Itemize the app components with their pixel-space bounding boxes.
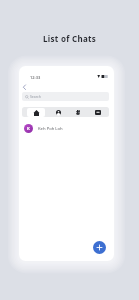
button[interactable]: Archive tab [89,108,107,117]
staticText: 12:33 [30,75,41,80]
staticText: List of Chats [43,33,97,44]
staticText: Keh Poh Loh [38,126,63,132]
button[interactable]: Search [22,92,109,101]
button[interactable]: Back [20,81,30,91]
button[interactable]: New chat [93,241,106,254]
staticText: K [27,126,30,132]
button[interactable]: Groups tab [69,108,87,117]
button[interactable]: K [19,122,114,135]
staticText: Search [30,94,41,99]
button[interactable]: Profile tab [49,108,67,117]
button[interactable]: Chats tab [27,108,45,117]
